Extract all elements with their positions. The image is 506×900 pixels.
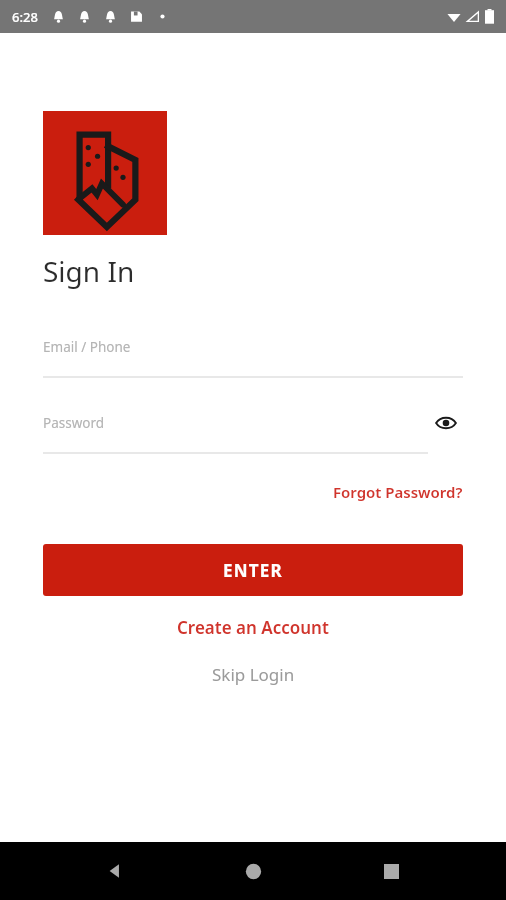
staticText: ENTER xyxy=(223,559,283,582)
button[interactable]: Show password xyxy=(429,406,463,440)
button[interactable]: Back xyxy=(92,848,138,894)
button[interactable]: App logo xyxy=(43,111,167,235)
button[interactable]: ENTER xyxy=(43,544,463,596)
staticText: 6:28 xyxy=(12,8,38,26)
staticText: Sign In xyxy=(43,252,135,290)
button[interactable]: Recent apps xyxy=(368,848,414,894)
button[interactable]: Skip Login xyxy=(198,655,309,694)
button[interactable]: Email / Phone xyxy=(43,330,463,364)
button[interactable]: Forgot Password? xyxy=(333,478,463,506)
staticText: Forgot Password? xyxy=(333,482,463,502)
button[interactable]: Password xyxy=(43,406,463,440)
staticText: Password xyxy=(43,414,105,432)
button[interactable]: Home xyxy=(230,848,276,894)
staticText: Skip Login xyxy=(212,663,295,686)
button[interactable]: Create an Account xyxy=(163,608,343,647)
staticText: Create an Account xyxy=(177,616,329,639)
staticText: Email / Phone xyxy=(43,338,131,356)
